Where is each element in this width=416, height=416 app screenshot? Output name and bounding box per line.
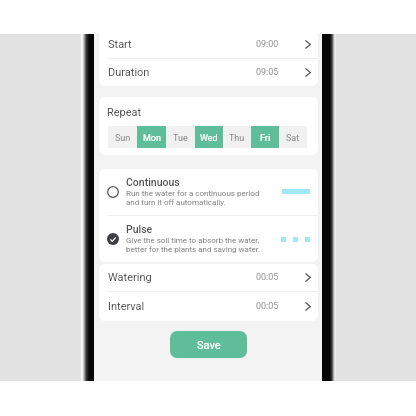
button[interactable]: Thu [223, 126, 251, 148]
button[interactable]: Start [99, 30, 318, 58]
other: Selected [107, 233, 119, 245]
staticText: and turn it off automatically. [126, 198, 226, 207]
other: Not selected [107, 186, 119, 198]
button[interactable]: Fri [251, 126, 279, 148]
staticText: Duration [108, 66, 150, 79]
staticText: Tue [173, 133, 188, 144]
staticText: Continuous [126, 176, 180, 188]
button[interactable]: Save [170, 331, 247, 358]
staticText: Mon [143, 133, 161, 144]
staticText: Save [197, 339, 221, 352]
button[interactable]: Tue [166, 126, 195, 148]
button[interactable]: Sun [108, 126, 137, 148]
staticText: Repeat [107, 106, 142, 119]
staticText: Pulse [126, 223, 153, 235]
staticText: 00:05 [256, 301, 279, 312]
staticText: Sat [286, 133, 300, 144]
staticText: Wed [200, 133, 218, 144]
staticText: Interval [108, 300, 145, 313]
staticText: better for the plants and saving water. [126, 245, 261, 254]
staticText: Run the water for a continuous period [126, 189, 260, 198]
staticText: 00:05 [256, 272, 279, 283]
staticText: Watering [108, 271, 152, 284]
button[interactable]: Not selected [99, 169, 318, 215]
staticText: Thu [229, 133, 245, 144]
button[interactable]: Watering [99, 264, 318, 291]
button[interactable]: Interval [99, 292, 318, 320]
staticText: 09:00 [256, 39, 279, 50]
staticText: 09:05 [256, 67, 279, 78]
staticText: Sun [115, 133, 131, 144]
staticText: Start [108, 38, 132, 51]
staticText: Give the soil time to absorb the water, [126, 236, 260, 245]
staticText: Fri [260, 133, 271, 144]
button[interactable]: Mon [137, 126, 166, 148]
button[interactable]: Selected [99, 216, 318, 262]
button[interactable]: Wed [195, 126, 223, 148]
button[interactable]: Duration [99, 59, 318, 86]
button[interactable]: Sat [279, 126, 307, 148]
